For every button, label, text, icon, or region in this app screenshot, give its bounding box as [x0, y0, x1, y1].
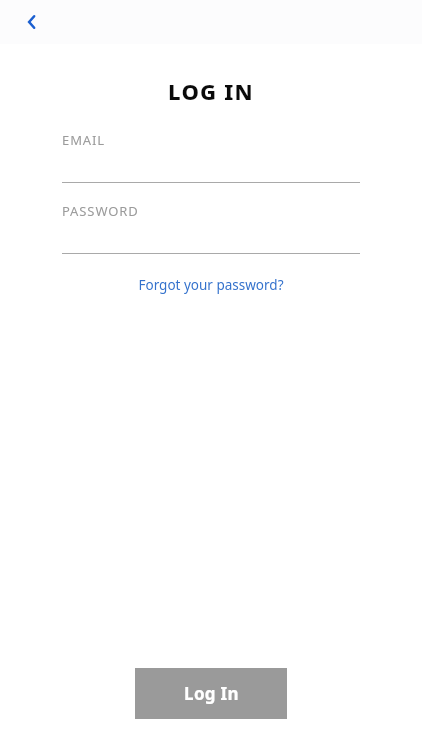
button[interactable]: Forgot your password?	[130, 273, 292, 297]
staticText: LOG IN	[0, 76, 422, 106]
button[interactable]: Back	[10, 0, 54, 44]
button[interactable]: EMAIL	[62, 131, 360, 183]
staticText: Forgot your password?	[138, 276, 284, 294]
staticText: EMAIL	[62, 131, 106, 149]
button[interactable]: PASSWORD	[62, 202, 360, 254]
staticText: Log In	[184, 682, 239, 705]
staticText: PASSWORD	[62, 202, 139, 220]
button[interactable]: Log In	[135, 668, 287, 719]
